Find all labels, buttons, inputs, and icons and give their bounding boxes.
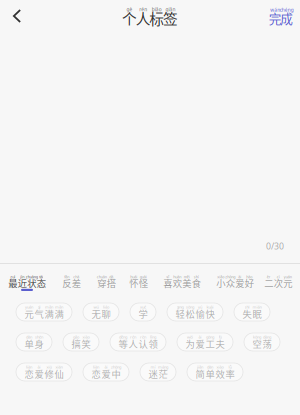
staticText: 欢 [173,276,182,290]
staticText: 近 [18,276,27,290]
staticText: 满 [54,307,63,320]
staticText: 爱 [34,367,43,380]
button[interactable]: xǐ [163,275,201,291]
staticText: gōng [206,334,214,340]
button[interactable]: shī [234,303,270,321]
staticText: 状 [27,276,36,290]
button[interactable]: liàn [16,363,72,381]
button[interactable]: liàn [83,363,129,381]
staticText: 领 [148,337,157,350]
staticText: kōng [253,334,261,340]
staticText: liàn [93,364,99,370]
staticText: rén [130,334,136,340]
staticText: mí [150,364,155,370]
staticText: 元 [24,307,33,320]
staticText: 恋 [91,367,100,380]
staticText: 中 [111,367,120,380]
button[interactable]: chuān [97,275,116,291]
button[interactable]: jiǎn [187,363,243,381]
staticText: huān [173,274,181,279]
staticText: 成 [280,9,293,27]
staticText: jiǎn [197,364,203,370]
staticText: 差 [72,276,81,290]
button[interactable]: mí [140,363,176,381]
staticText: 率 [225,367,234,380]
staticText: 搭 [107,276,116,290]
staticText: 人 [136,7,151,29]
staticText: 迷 [148,367,157,380]
staticText: fǎn [64,274,69,279]
staticText: xiào [82,334,89,340]
button[interactable]: xiǎo [216,275,254,291]
staticText: 恋 [24,367,33,380]
staticText: xiān [55,364,62,370]
staticText: děng [119,334,127,340]
staticText: chéng [280,7,294,13]
button[interactable]: wán [262,4,300,28]
button[interactable]: xué [130,303,156,321]
staticText: qì [37,304,40,310]
button[interactable]: fǎn [62,275,81,291]
staticText: rèn [140,334,146,340]
staticText: 眠 [252,307,261,320]
staticText: 怪 [139,276,148,290]
staticText: yuán [25,304,33,310]
staticText: 爱 [101,367,110,380]
staticText: yú [198,304,202,310]
button[interactable]: Back [0,4,34,28]
staticText: mián [252,304,261,310]
staticText: 笑 [81,337,90,350]
button[interactable]: wèi [177,333,233,351]
staticText: qiān [165,6,175,13]
button[interactable]: kōng [244,333,280,351]
staticText: 单 [24,337,33,350]
staticText: 修 [44,367,53,380]
staticText: dān [207,364,213,370]
button[interactable]: wú [83,303,119,321]
button[interactable]: qīng [167,303,223,321]
staticText: xué [140,304,146,310]
staticText: 态 [37,276,46,290]
staticText: 简 [195,367,204,380]
button[interactable]: huái [129,275,148,291]
staticText: xiào [216,364,223,370]
staticText: biāo [152,6,162,13]
button[interactable]: èr [264,275,292,291]
staticText: gè [127,6,133,13]
button[interactable]: gǎo [63,333,99,351]
staticText: dān [26,334,32,340]
staticText: wán [270,7,280,13]
staticText: 最 [8,276,17,290]
staticText: yuán [284,274,292,279]
button[interactable]: děng [110,333,166,351]
staticText: 小 [216,276,225,290]
staticText: huái [130,274,137,279]
staticText: liáo [103,304,109,310]
staticText: chā [73,274,79,279]
staticText: 荡 [262,337,271,350]
staticText: ài [198,334,201,340]
staticText: 好 [245,276,254,290]
staticText: 聊 [101,307,110,320]
staticText: èr [267,274,271,279]
button[interactable]: yuán [16,303,72,321]
staticText: 美 [182,276,191,290]
staticText: 夫 [215,337,224,350]
staticText: 单 [205,367,214,380]
staticText: 喜 [163,276,172,290]
staticText: 茫 [158,367,167,380]
staticText: 怀 [129,276,138,290]
staticText: shī [244,304,249,310]
staticText: 失 [242,307,251,320]
button[interactable]: dān [16,333,52,351]
staticText: fū [218,334,221,340]
staticText: 轻 [175,307,184,320]
staticText: 认 [138,337,147,350]
staticText: zuì [10,274,15,279]
staticText: ài [37,364,40,370]
staticText: jìn [20,274,24,279]
button[interactable]: zuì [8,275,46,291]
staticText: 为 [185,337,194,350]
staticText: gǎo [73,334,79,340]
staticText: liàn [26,364,32,370]
